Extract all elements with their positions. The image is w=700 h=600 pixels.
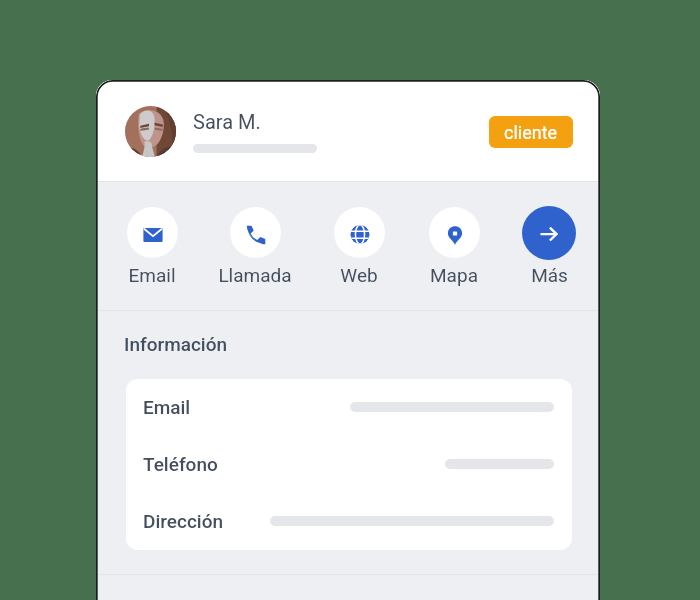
staticText: Más [531, 264, 568, 286]
button[interactable]: cliente [489, 116, 573, 148]
button[interactable]: Mapa [409, 206, 499, 284]
staticText: Información [124, 333, 228, 355]
staticText: Sara M. [193, 110, 261, 133]
staticText: Email [143, 396, 191, 418]
button[interactable]: Web [314, 206, 404, 284]
staticText: Web [340, 264, 378, 286]
staticText: Llamada [218, 264, 292, 286]
staticText: Mapa [430, 264, 478, 286]
button[interactable]: Dirección [126, 493, 572, 550]
staticText: Email [128, 264, 176, 286]
button[interactable]: Email [126, 379, 572, 436]
staticText: cliente [504, 122, 558, 143]
staticText: Teléfono [143, 453, 218, 475]
button[interactable]: Teléfono [126, 436, 572, 493]
button[interactable]: Email [107, 206, 197, 284]
button[interactable]: Más [504, 206, 594, 284]
staticText: Dirección [143, 510, 223, 532]
button[interactable]: Llamada [210, 206, 300, 284]
